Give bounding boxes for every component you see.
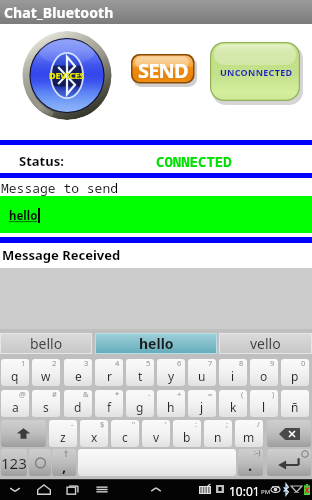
staticText: x [91,429,98,445]
staticText: d [74,399,82,415]
button[interactable]: f [95,390,123,417]
button[interactable]: y [157,359,185,386]
staticText: g [136,399,144,415]
button[interactable]: d [64,390,92,417]
staticText: - [71,420,74,429]
staticText: Message to send [1,179,119,197]
button[interactable]: Expand [148,483,164,496]
staticText: . [248,455,253,475]
staticText: i [231,368,235,384]
staticText: @ [19,390,26,399]
staticText: h [167,399,175,415]
button[interactable]: 123 [1,449,27,476]
staticText: u [198,368,206,384]
button[interactable]: Space [78,449,236,476]
staticText: b [183,429,191,445]
button[interactable]: c [111,420,139,447]
staticText: , [62,456,67,476]
button[interactable]: Recents [64,483,81,497]
staticText: * [115,390,120,399]
button[interactable]: u [188,359,216,386]
button[interactable]: Back [7,483,23,496]
staticText: ( [241,390,244,399]
staticText: 2 [52,359,57,368]
button[interactable]: Menu [94,483,110,496]
staticText: k [230,399,237,415]
staticText: t [138,368,143,384]
button[interactable]: n [204,420,232,447]
button[interactable]: o [250,359,278,386]
button[interactable]: shift [1,420,46,447]
button[interactable]: bello [0,333,92,354]
staticText: Chat_Bluetooth [4,3,114,22]
button[interactable]: l [250,390,278,417]
button[interactable]: vello [219,333,312,354]
staticText: y [168,368,175,384]
staticText: DEVICES [49,69,85,81]
staticText: Message Received [2,246,121,264]
button[interactable]: b [173,420,201,447]
button[interactable]: w [32,359,60,386]
button[interactable]: v [142,420,170,447]
staticText: j [200,399,204,415]
button[interactable]: comma [52,449,76,476]
staticText: / [257,420,260,429]
button[interactable]: a [1,390,29,417]
button[interactable]: p [281,359,309,386]
button[interactable] [131,54,197,86]
staticText: 3 [84,359,89,368]
staticText: - [148,390,151,399]
staticText: s [43,399,49,415]
staticText: # [52,390,57,399]
staticText: = [208,390,213,399]
staticText: :-) [254,449,261,458]
staticText: a [12,399,19,415]
button[interactable]: hello [0,196,312,233]
button[interactable]: t [126,359,154,386]
staticText: z [60,429,66,445]
staticText: UNCONNECTED [220,66,293,78]
staticText: e [75,368,82,384]
staticText: r [107,368,112,384]
staticText: q [11,368,19,384]
button[interactable]: g [126,390,154,417]
button[interactable]: period [238,449,263,476]
staticText: hello [9,208,38,224]
button[interactable]: e [64,359,92,386]
staticText: n [214,429,222,445]
button[interactable]: z [49,420,77,447]
staticText: bello [30,334,63,353]
button[interactable]: q [1,359,29,386]
staticText: p [291,368,299,384]
button[interactable]: i [219,359,247,386]
button[interactable]: x [80,420,108,447]
staticText: 0 [301,359,306,368]
staticText: c [122,429,128,445]
button[interactable]: hello [95,333,217,354]
button[interactable]: s [32,390,60,417]
staticText: 7 [208,359,213,368]
button[interactable]: ñ [281,390,309,417]
staticText: v [153,429,160,445]
staticText: 4 [115,359,120,368]
button[interactable]: del [267,420,311,447]
staticText: 1 [21,359,26,368]
staticText: 123 [1,453,27,473]
staticText: : [195,420,198,429]
button[interactable]: Home [35,482,53,497]
button[interactable]: k [219,390,247,417]
button[interactable]: r [95,359,123,386]
button[interactable]: m [235,420,263,447]
button[interactable]: h [157,390,185,417]
button[interactable]: Devices [22,31,112,120]
staticText: PM [261,488,271,496]
button[interactable]: j [188,390,216,417]
staticText: " [132,420,136,429]
staticText: 10:01 [229,483,260,499]
button[interactable]: globe [29,449,51,476]
staticText: ) [272,390,275,399]
button[interactable]: enter [267,449,311,476]
staticText: m [243,429,255,445]
staticText: f [107,399,112,415]
button[interactable] [210,42,303,104]
